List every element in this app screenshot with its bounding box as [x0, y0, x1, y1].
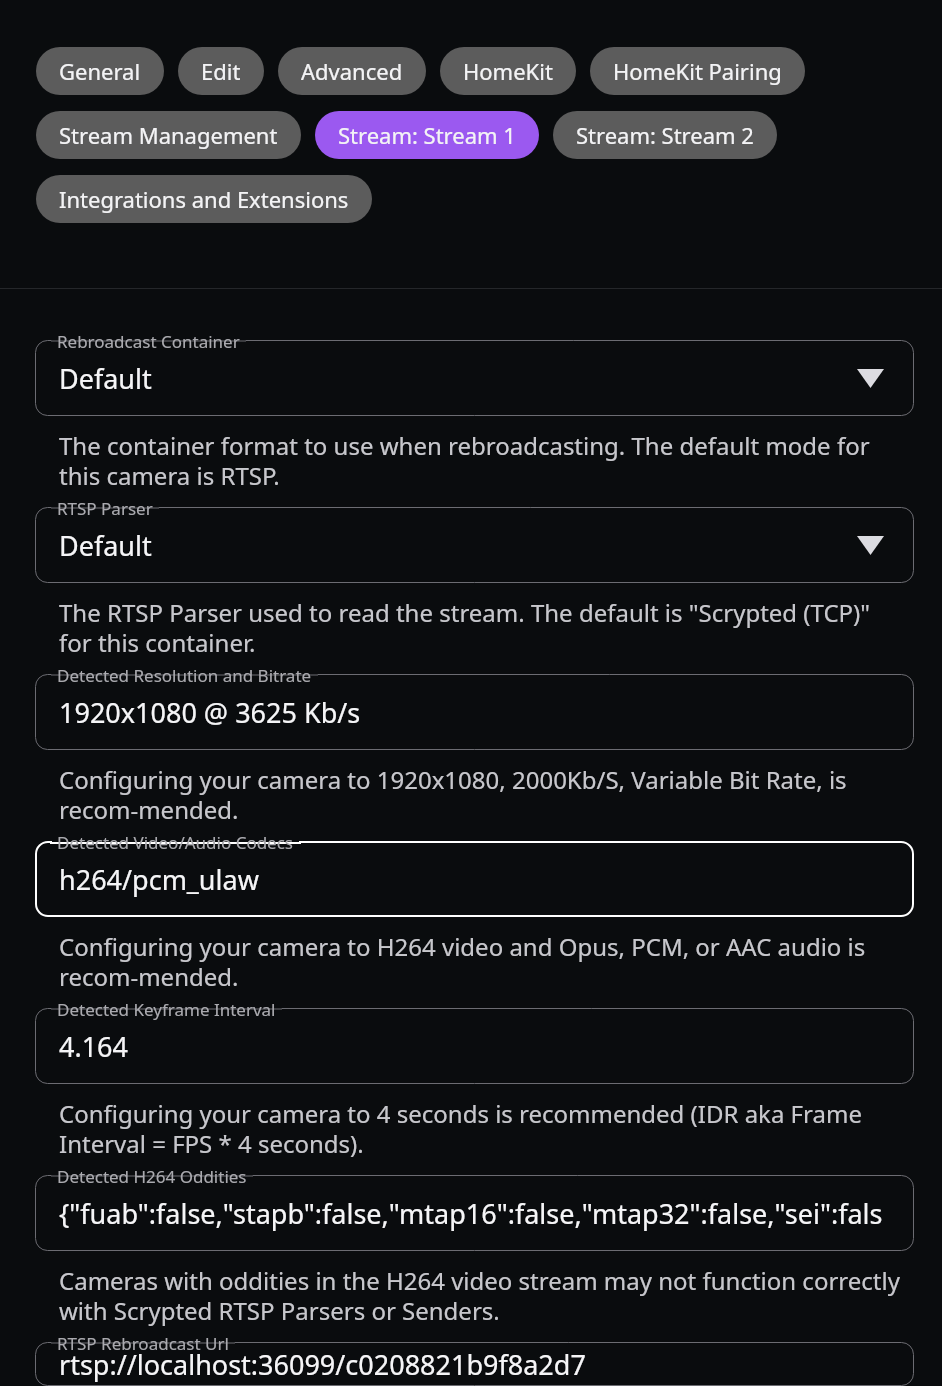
button[interactable]: Advanced — [278, 47, 426, 95]
staticText: Stream Management — [59, 120, 278, 150]
staticText: Rebroadcast Container — [57, 330, 240, 353]
button[interactable]: HomeKit Pairing — [590, 47, 805, 95]
button[interactable]: Edit — [178, 47, 264, 95]
staticText: Stream: Stream 2 — [576, 120, 754, 150]
staticText: Integrations and Extensions — [59, 184, 349, 214]
staticText: Default — [59, 360, 152, 397]
button[interactable]: Stream Management — [36, 111, 301, 159]
staticText: The container format to use when rebroad… — [59, 429, 904, 492]
staticText: General — [59, 56, 141, 86]
button[interactable]: Stream: Stream 2 — [553, 111, 777, 159]
button[interactable]: Open Rebroadcast Container dropdown — [850, 358, 890, 398]
staticText: rtsp://localhost:36099/c0208821b9f8a2d7 — [59, 1346, 586, 1383]
button[interactable]: Stream: Stream 1 — [315, 111, 539, 159]
staticText: Configuring your camera to 4 seconds is … — [59, 1097, 904, 1160]
staticText: Detected Resolution and Bitrate — [57, 664, 312, 687]
staticText: Configuring your camera to H264 video an… — [59, 930, 904, 993]
staticText: RTSP Parser — [57, 497, 153, 520]
staticText: The RTSP Parser used to read the stream.… — [59, 596, 904, 659]
staticText: Cameras with oddities in the H264 video … — [59, 1264, 904, 1327]
button[interactable]: HomeKit — [440, 47, 576, 95]
staticText: {"fuab":false,"stapb":false,"mtap16":fal… — [59, 1195, 890, 1232]
button[interactable]: Integrations and Extensions — [36, 175, 372, 223]
staticText: Edit — [201, 56, 241, 86]
staticText: 1920x1080 @ 3625 Kb/s — [59, 694, 361, 731]
staticText: Advanced — [301, 56, 403, 86]
button[interactable]: General — [36, 47, 164, 95]
staticText: HomeKit Pairing — [613, 56, 782, 86]
staticText: Default — [59, 527, 152, 564]
staticText: Stream: Stream 1 — [338, 120, 516, 150]
staticText: Detected H264 Oddities — [57, 1165, 247, 1188]
button[interactable]: Open RTSP Parser dropdown — [850, 525, 890, 565]
staticText: 4.164 — [59, 1028, 129, 1065]
staticText: Detected Video/Audio Codecs — [57, 831, 294, 854]
staticText: Configuring your camera to 1920x1080, 20… — [59, 763, 904, 826]
staticText: h264/pcm_ulaw — [59, 861, 259, 898]
staticText: HomeKit — [463, 56, 553, 86]
staticText: RTSP Rebroadcast Url — [57, 1332, 229, 1355]
staticText: Detected Keyframe Interval — [57, 998, 276, 1021]
